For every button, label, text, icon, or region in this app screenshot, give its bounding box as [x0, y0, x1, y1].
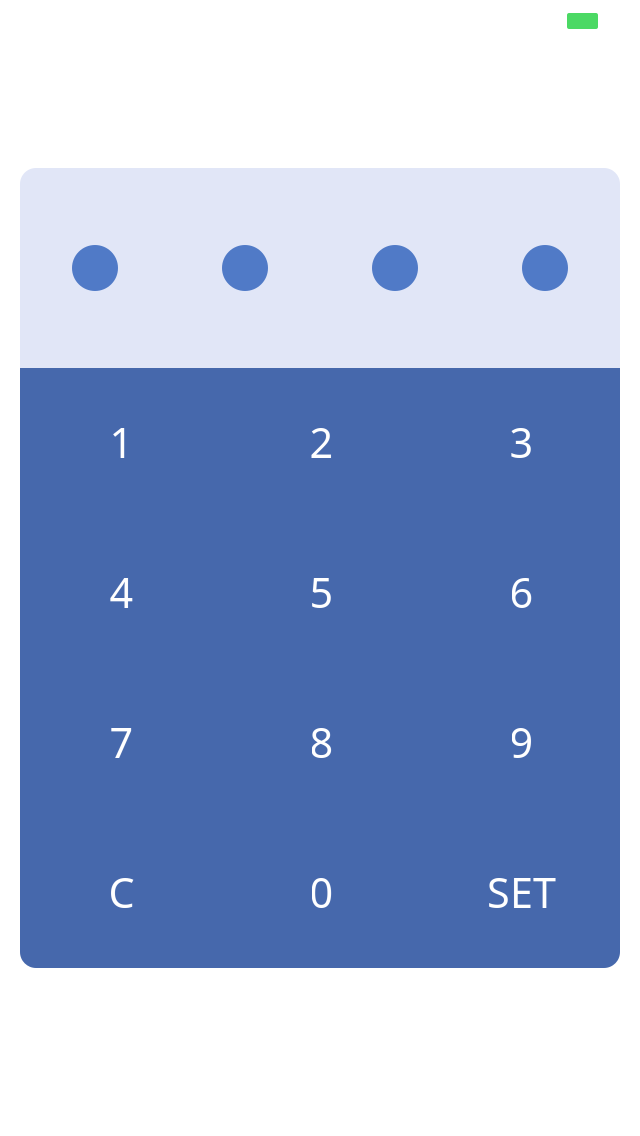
button[interactable]: 7: [20, 668, 220, 818]
staticText: 0: [309, 865, 333, 919]
button[interactable]: 0: [220, 818, 420, 968]
button[interactable]: 4: [20, 518, 220, 668]
button[interactable]: Clear: [20, 818, 220, 968]
staticText: 7: [109, 715, 133, 769]
staticText: 8: [309, 715, 333, 769]
button[interactable]: 8: [220, 668, 420, 818]
button[interactable]: SET: [420, 818, 620, 968]
button[interactable]: 5: [220, 518, 420, 668]
button[interactable]: 3: [420, 368, 620, 518]
staticText: C: [108, 865, 134, 919]
staticText: 3: [509, 415, 533, 469]
staticText: 6: [509, 565, 533, 619]
button[interactable]: 6: [420, 518, 620, 668]
staticText: 4: [109, 565, 133, 619]
staticText: 5: [309, 565, 333, 619]
staticText: 2: [309, 415, 333, 469]
button[interactable]: 1: [20, 368, 220, 518]
staticText: 9: [509, 715, 533, 769]
staticText: SET: [487, 865, 556, 919]
button[interactable]: 2: [220, 368, 420, 518]
staticText: 1: [109, 415, 133, 469]
button[interactable]: 9: [420, 668, 620, 818]
